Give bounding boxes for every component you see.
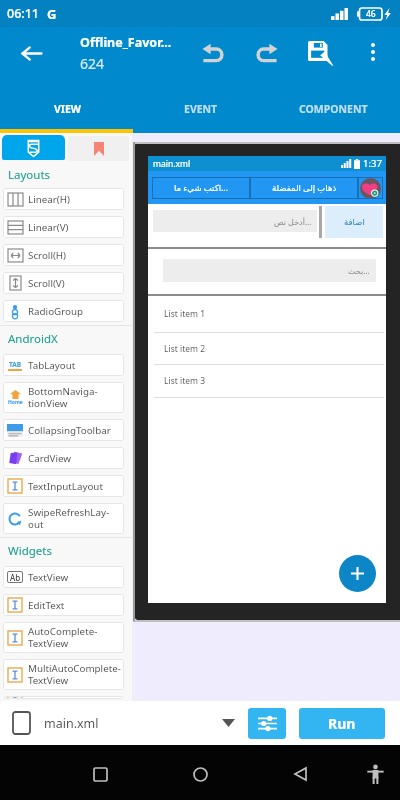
button[interactable]: List item 1 <box>164 296 386 332</box>
staticText: Home <box>8 399 23 406</box>
button[interactable]: Save <box>301 34 339 72</box>
staticText: أدخل نص... <box>274 216 312 227</box>
button[interactable]: Back <box>11 33 51 73</box>
button[interactable]: Run <box>299 708 385 739</box>
button[interactable]: AutoComplete- TextView <box>3 622 124 653</box>
staticText: TAB <box>9 360 22 369</box>
button[interactable]: Favourites <box>68 136 129 161</box>
button[interactable]: CardView <box>3 447 124 469</box>
button[interactable]: CollapsingToolbar <box>3 419 124 441</box>
button[interactable]: Scroll(V) <box>3 272 124 294</box>
button[interactable]: Select file <box>215 710 241 736</box>
button[interactable]: Linear(V) <box>3 216 124 238</box>
button[interactable] <box>3 696 124 699</box>
staticText: Layouts <box>8 167 51 183</box>
staticText: main.xml <box>44 715 99 732</box>
button[interactable]: اكتب شيء ما... <box>152 177 250 199</box>
staticText: G <box>47 5 57 23</box>
staticText: EVENT <box>184 102 218 116</box>
staticText: TabLayout <box>28 359 76 372</box>
staticText: COMPONENT <box>299 102 368 116</box>
button[interactable]: COMPONENT <box>267 88 400 129</box>
button[interactable]: Add <box>339 555 376 592</box>
staticText: 624 <box>80 54 105 73</box>
button[interactable]: SwipeRefreshLay- out <box>3 503 124 534</box>
button[interactable]: EditText <box>3 594 124 616</box>
button[interactable]: Scroll(H) <box>3 244 124 266</box>
staticText: List item 2 <box>164 343 206 355</box>
staticText: TextView <box>28 571 69 584</box>
staticText: AutoComplete- TextView <box>28 625 98 650</box>
button[interactable]: Ab <box>3 566 124 588</box>
staticText: List item 1 <box>164 308 206 320</box>
button[interactable]: Home <box>3 382 124 413</box>
staticText: List item 3 <box>164 375 206 387</box>
staticText: MultiAutoComplete- TextView <box>28 662 121 687</box>
staticText: VIEW <box>54 102 81 116</box>
staticText: Linear(H) <box>28 193 70 206</box>
button[interactable]: بحث... <box>163 259 376 282</box>
button[interactable]: Recents <box>78 752 122 796</box>
button[interactable]: Home <box>178 752 222 796</box>
staticText: TextInputLayout <box>28 480 103 493</box>
button[interactable]: Undo <box>194 34 232 72</box>
staticText: Run <box>328 714 356 733</box>
staticText: بحث... <box>348 265 370 276</box>
staticText: Offline_Favor... <box>80 34 172 51</box>
staticText: Ab <box>10 572 21 583</box>
button[interactable]: RadioGroup <box>3 300 124 322</box>
staticText: Scroll(V) <box>28 277 65 290</box>
staticText: اكتب شيء ما... <box>174 182 228 194</box>
staticText: 46 <box>366 8 376 20</box>
staticText: AndroidX <box>8 331 58 347</box>
button[interactable]: أدخل نص... <box>153 210 317 232</box>
staticText: ذهاب إلى المفضلة <box>272 182 337 194</box>
button[interactable]: Back <box>278 752 322 796</box>
button[interactable]: Settings <box>248 708 286 739</box>
button[interactable]: VIEW <box>0 88 134 129</box>
button[interactable]: ذهاب إلى المفضلة <box>250 177 358 199</box>
button[interactable]: EVENT <box>134 88 267 129</box>
staticText: main.xml <box>153 158 191 170</box>
staticText: 1:37 <box>363 157 382 170</box>
staticText: CardView <box>28 452 71 465</box>
button[interactable]: List item 3 <box>164 365 386 397</box>
button[interactable]: More options <box>355 34 391 70</box>
staticText: اضافة <box>344 217 365 227</box>
button[interactable]: اضافة <box>325 206 383 238</box>
staticText: Scroll(H) <box>28 249 67 262</box>
button[interactable]: Palette <box>2 135 65 160</box>
button[interactable]: TAB <box>3 354 124 376</box>
staticText: 06:11 <box>7 5 40 22</box>
staticText: SwipeRefreshLay- out <box>28 506 110 531</box>
button[interactable]: TextInputLayout <box>3 475 124 497</box>
button[interactable]: Linear(H) <box>3 188 124 210</box>
staticText: CollapsingToolbar <box>28 424 111 437</box>
button[interactable]: Redo <box>248 34 286 72</box>
button[interactable]: Accessibility <box>353 752 397 796</box>
button[interactable]: List item 2 <box>164 333 386 364</box>
staticText: RadioGroup <box>28 305 84 318</box>
staticText: BottomNaviga- tionView <box>28 385 98 410</box>
staticText: Linear(V) <box>28 221 69 234</box>
staticText: EditText <box>28 599 65 612</box>
staticText: Widgets <box>8 543 52 559</box>
button[interactable]: MultiAutoComplete- TextView <box>3 659 124 690</box>
